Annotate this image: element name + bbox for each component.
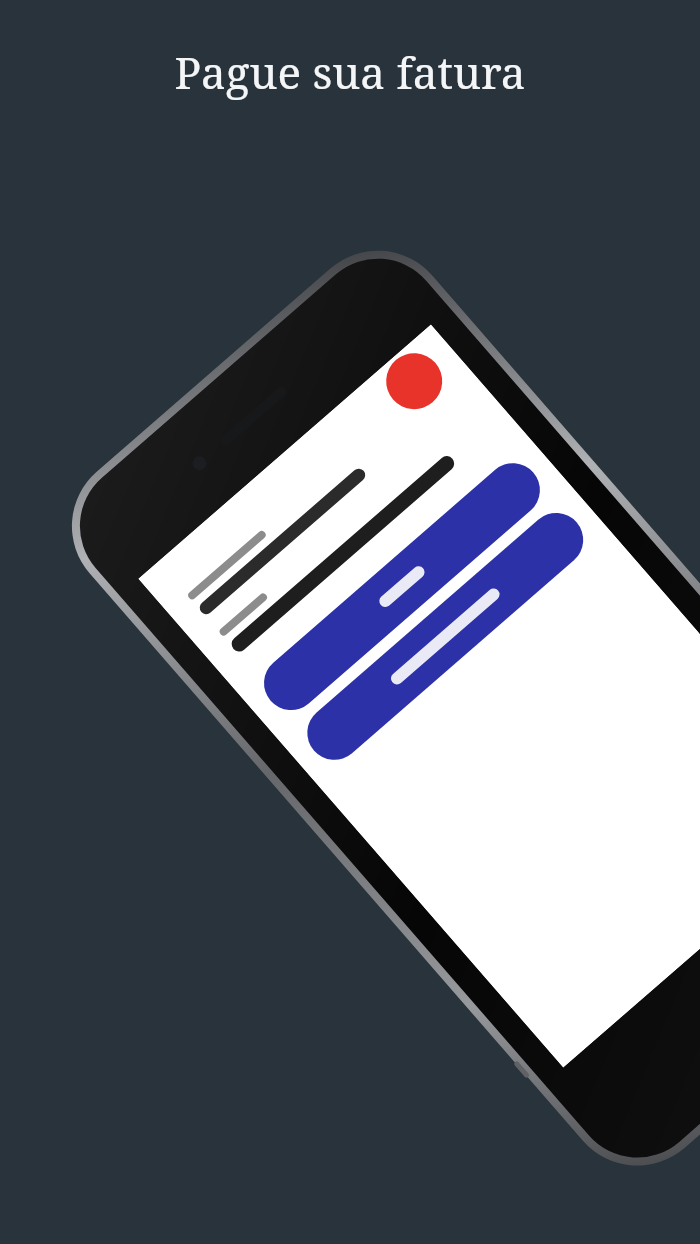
button[interactable]: Pague sua fatura: [0, 42, 700, 102]
button[interactable]: Fatura exibida no celular: [520, 1004, 640, 1124]
